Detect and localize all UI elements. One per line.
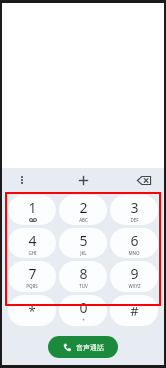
staticText: 4: [28, 231, 37, 250]
button[interactable]: 4: [8, 228, 56, 258]
staticText: #: [130, 302, 139, 320]
staticText: 9: [130, 264, 139, 283]
staticText: 8: [79, 264, 88, 283]
staticText: ABC: [79, 217, 88, 223]
button[interactable]: Backspace: [124, 168, 164, 192]
staticText: WXYZ: [128, 283, 141, 289]
button[interactable]: *: [8, 295, 56, 326]
staticText: JKL: [80, 250, 87, 256]
button[interactable]: 0: [59, 295, 107, 326]
button[interactable]: 音声通話: [48, 336, 118, 358]
staticText: 7: [28, 264, 37, 283]
staticText: 3: [130, 198, 139, 217]
staticText: 1: [28, 198, 37, 217]
staticText: 音声通話: [76, 343, 104, 352]
button[interactable]: #: [110, 295, 158, 326]
staticText: TUV: [79, 283, 88, 289]
staticText: 6: [130, 231, 139, 250]
staticText: 5: [79, 231, 88, 250]
staticText: +: [82, 317, 85, 323]
button[interactable]: 3: [110, 195, 158, 225]
button[interactable]: More options: [2, 168, 42, 192]
staticText: 0: [79, 298, 88, 317]
staticText: GHI: [28, 250, 37, 256]
button[interactable]: 8: [59, 261, 107, 292]
staticText: 2: [79, 198, 88, 217]
button[interactable]: 6: [110, 228, 158, 258]
button[interactable]: 5: [59, 228, 107, 258]
staticText: *: [28, 302, 36, 320]
staticText: PQRS: [26, 283, 38, 289]
button[interactable]: 7: [8, 261, 56, 292]
button[interactable]: 2: [59, 195, 107, 225]
button[interactable]: Add contact: [42, 168, 124, 192]
staticText: DEF: [130, 217, 139, 223]
button[interactable]: 9: [110, 261, 158, 292]
button[interactable]: 1: [8, 195, 56, 225]
staticText: MNO: [128, 250, 140, 256]
